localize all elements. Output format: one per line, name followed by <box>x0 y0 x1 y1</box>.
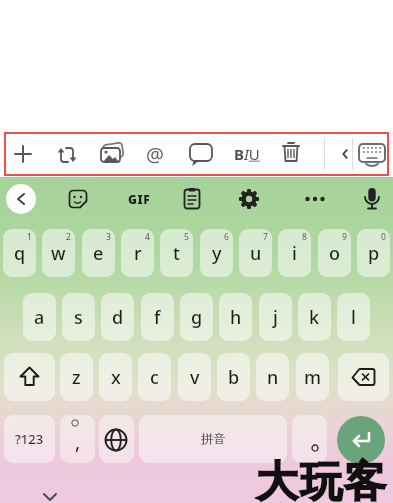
button[interactable] <box>338 353 389 401</box>
staticText: w <box>51 241 66 266</box>
staticText: j <box>273 305 278 330</box>
staticText: v <box>190 365 200 390</box>
button[interactable]: j <box>259 293 292 341</box>
staticText: b <box>228 365 240 390</box>
staticText: r <box>134 241 142 266</box>
staticText: GIF <box>128 191 151 207</box>
staticText: 3 <box>106 231 111 243</box>
button[interactable]: o <box>318 229 351 277</box>
button[interactable]: u <box>239 229 272 277</box>
staticText: BIU <box>234 144 260 164</box>
button[interactable]: , <box>60 415 95 463</box>
button[interactable]: p <box>357 229 390 277</box>
staticText: 8 <box>302 231 307 243</box>
staticText: x <box>111 365 121 390</box>
button[interactable] <box>335 144 355 164</box>
staticText: z <box>72 365 81 390</box>
staticText: 2 <box>66 231 71 243</box>
staticText: m <box>304 365 322 390</box>
button[interactable]: v <box>178 353 211 401</box>
button[interactable]: c <box>138 353 171 401</box>
staticText: 大玩客 <box>255 456 387 503</box>
button[interactable] <box>271 133 311 173</box>
staticText: k <box>309 305 320 330</box>
button[interactable] <box>4 353 55 401</box>
staticText: f <box>154 305 161 330</box>
button[interactable]: a <box>23 293 56 341</box>
button[interactable] <box>297 181 333 217</box>
button[interactable]: f <box>141 293 174 341</box>
button[interactable] <box>40 487 60 503</box>
staticText: q <box>14 241 26 266</box>
button[interactable]: n <box>256 353 289 401</box>
staticText: a <box>34 305 45 330</box>
button[interactable]: g <box>180 293 213 341</box>
staticText: d <box>112 305 124 330</box>
staticText: t <box>173 241 180 266</box>
staticText: n <box>267 365 279 390</box>
button[interactable]: 拼音 <box>139 415 287 463</box>
staticText: 4 <box>145 231 150 243</box>
button[interactable]: b <box>217 353 250 401</box>
button[interactable] <box>60 181 96 217</box>
button[interactable]: h <box>219 293 252 341</box>
button[interactable] <box>96 420 136 460</box>
button[interactable]: k <box>298 293 331 341</box>
staticText: 拼音 <box>201 431 226 447</box>
staticText: g <box>191 305 203 330</box>
button[interactable]: w <box>42 229 75 277</box>
button[interactable] <box>292 415 327 463</box>
staticText: 7 <box>263 231 268 243</box>
button[interactable] <box>68 416 82 430</box>
button[interactable]: i <box>278 229 311 277</box>
button[interactable] <box>3 134 43 174</box>
staticText: s <box>74 305 83 330</box>
button[interactable]: y <box>200 229 233 277</box>
button[interactable]: GIF <box>120 185 158 213</box>
button[interactable]: z <box>60 353 93 401</box>
button[interactable]: e <box>82 229 115 277</box>
staticText: c <box>150 365 159 390</box>
button[interactable] <box>354 181 390 217</box>
button[interactable]: m <box>296 353 329 401</box>
staticText: h <box>230 305 242 330</box>
button[interactable]: @ <box>140 139 170 169</box>
button[interactable]: t <box>160 229 193 277</box>
button[interactable]: d <box>101 293 134 341</box>
button[interactable] <box>181 133 221 173</box>
staticText: 5 <box>184 231 189 243</box>
staticText: @ <box>146 141 164 168</box>
button[interactable] <box>307 440 323 456</box>
staticText: o <box>329 241 340 266</box>
button[interactable]: ?123 <box>4 415 55 463</box>
staticText: ?123 <box>15 430 44 448</box>
staticText: y <box>212 241 222 266</box>
staticText: 6 <box>224 231 229 243</box>
button[interactable]: r <box>121 229 154 277</box>
button[interactable] <box>92 133 132 173</box>
button[interactable] <box>174 181 210 217</box>
button[interactable]: s <box>62 293 95 341</box>
staticText: u <box>250 241 262 266</box>
button[interactable] <box>231 181 267 217</box>
button[interactable] <box>47 135 87 175</box>
button[interactable]: l <box>337 293 370 341</box>
button[interactable] <box>337 416 385 464</box>
button[interactable]: x <box>99 353 132 401</box>
staticText: e <box>93 241 104 266</box>
staticText: l <box>351 305 356 330</box>
staticText: i <box>292 241 297 266</box>
staticText: 9 <box>342 231 347 243</box>
staticText: 1 <box>27 231 32 243</box>
staticText: 0 <box>381 231 386 243</box>
button[interactable]: q <box>3 229 36 277</box>
button[interactable]: BIU <box>228 140 266 168</box>
button[interactable] <box>6 184 36 214</box>
staticText: , <box>75 429 81 455</box>
button[interactable] <box>354 136 390 172</box>
staticText: p <box>368 241 380 266</box>
